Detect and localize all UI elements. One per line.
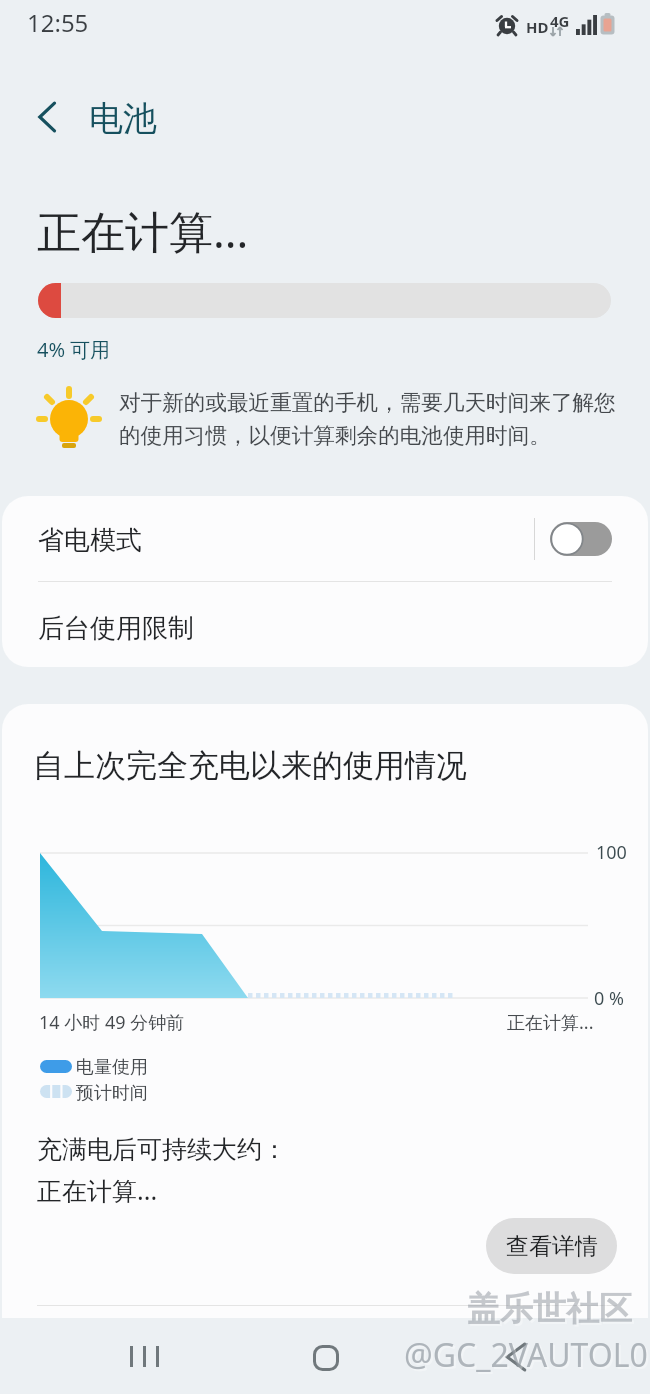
staticText: 充满电后可持续大约： <box>37 1134 287 1165</box>
staticText: 预计时间 <box>76 1082 148 1105</box>
button[interactable]: Recent apps <box>108 1322 182 1394</box>
staticText: 正在计算... <box>37 1173 158 1207</box>
staticText: 4% 可用 <box>37 336 111 363</box>
staticText: 4G <box>550 11 570 31</box>
button[interactable]: 查看详情 <box>486 1218 617 1274</box>
staticText: 盖乐世社区 <box>469 1290 634 1332</box>
button[interactable]: 省电模式 <box>2 496 648 581</box>
button[interactable]: Back <box>478 1322 552 1394</box>
staticText: 正在计算... <box>507 1010 594 1035</box>
staticText: 12:55 <box>27 6 89 39</box>
staticText: @GC_2VAUTOL0 <box>404 1333 648 1377</box>
staticText: 盖乐世社区 <box>467 1288 632 1330</box>
staticText: 100 <box>596 840 627 865</box>
button[interactable]: 后台使用限制 <box>2 582 648 667</box>
staticText: 电池 <box>89 97 157 140</box>
staticText: 0 % <box>594 986 624 1011</box>
staticText: 正在计算... <box>37 201 249 261</box>
staticText: 对于新的或最近重置的手机，需要几天时间来了解您的使用习惯，以便计算剩余的电池使用… <box>119 389 619 449</box>
staticText: 查看详情 <box>506 1232 598 1261</box>
staticText: HD <box>526 17 549 37</box>
staticText: 后台使用限制 <box>38 612 194 645</box>
button[interactable]: Home <box>289 1322 363 1394</box>
staticText: 14 小时 49 分钟前 <box>39 1010 185 1035</box>
button[interactable]: Back <box>14 84 80 150</box>
staticText: 自上次完全充电以来的使用情况 <box>33 746 467 785</box>
staticText: @GC_2VAUTOL0 <box>406 1335 650 1379</box>
staticText: 省电模式 <box>38 524 142 557</box>
staticText: 电量使用 <box>76 1056 148 1079</box>
